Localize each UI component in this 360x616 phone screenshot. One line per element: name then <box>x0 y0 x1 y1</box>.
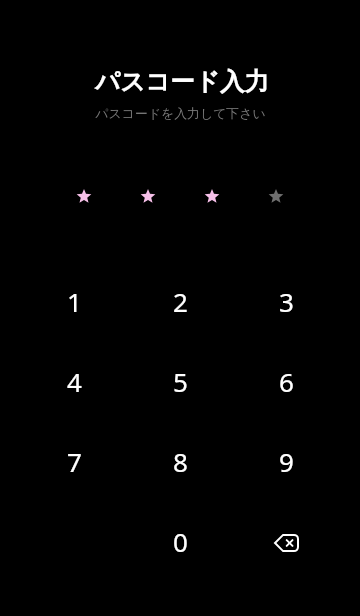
staticText: 6 <box>279 364 294 399</box>
staticText: 2 <box>173 284 188 319</box>
button[interactable]: 5 <box>127 341 233 421</box>
button[interactable]: 0 <box>127 501 233 581</box>
staticText: 5 <box>173 364 188 399</box>
button[interactable]: Backspace <box>233 501 339 581</box>
staticText: 1 <box>67 284 82 319</box>
button[interactable]: 8 <box>127 421 233 501</box>
button[interactable]: 3 <box>233 261 339 341</box>
staticText: 7 <box>67 444 82 479</box>
staticText: パスコードを入力して下さい <box>95 106 266 122</box>
staticText: パスコード入力 <box>95 66 269 97</box>
button[interactable]: 6 <box>233 341 339 421</box>
staticText: 9 <box>279 444 294 479</box>
button[interactable]: 2 <box>127 261 233 341</box>
staticText: 0 <box>173 524 188 559</box>
staticText: 3 <box>279 284 294 319</box>
button[interactable]: 4 <box>21 341 127 421</box>
staticText: 4 <box>67 364 82 399</box>
staticText: 8 <box>173 444 188 479</box>
button[interactable]: 1 <box>21 261 127 341</box>
button[interactable]: 7 <box>21 421 127 501</box>
button[interactable]: 9 <box>233 421 339 501</box>
